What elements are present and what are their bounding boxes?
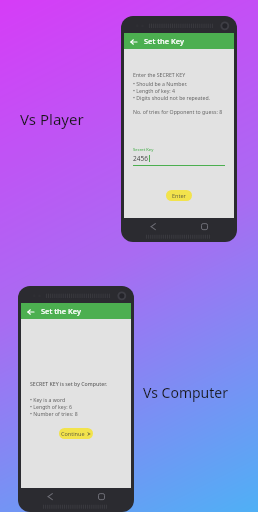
button[interactable]: Secret Key (133, 147, 225, 166)
staticText: • Digits should not be repeated. (133, 94, 210, 101)
staticText: Enter the SECRET KEY (133, 71, 186, 78)
staticText: Set the Key (41, 306, 81, 316)
button[interactable]: Enter (166, 190, 192, 201)
staticText: Secret Key (133, 147, 154, 153)
staticText: Vs Computer (143, 383, 229, 402)
staticText: 2456 (133, 154, 148, 163)
button[interactable]: Back (25, 306, 36, 317)
staticText: Enter (172, 192, 186, 199)
button[interactable]: Continue (59, 428, 93, 439)
button[interactable]: Back (128, 36, 139, 47)
staticText: Vs Player (20, 109, 84, 129)
staticText: • Length of key: 6 (30, 403, 72, 410)
staticText: Set the Key (144, 36, 184, 46)
staticText: SECRET KEY is set by Computer. (30, 380, 107, 387)
staticText: • Number of tries: 8 (30, 410, 78, 417)
staticText: • Length of key: 4 (133, 87, 175, 94)
staticText: • Should be a Number. (133, 80, 188, 87)
staticText: No. of tries for Opponent to guess: 8 (133, 108, 223, 115)
staticText: Continue (61, 430, 85, 437)
staticText: • Key is a word (30, 396, 66, 403)
